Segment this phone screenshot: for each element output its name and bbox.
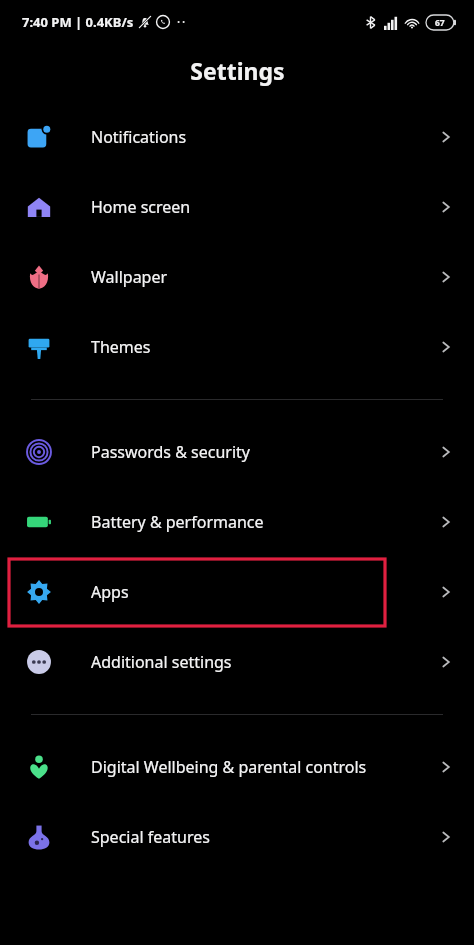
other: Passwords and security bbox=[26, 439, 52, 465]
staticText: Passwords & security bbox=[91, 441, 426, 463]
other: Special features bbox=[26, 824, 52, 850]
other: Additional settings bbox=[26, 649, 52, 675]
staticText: Digital Wellbeing & parental controls bbox=[91, 756, 426, 778]
button[interactable]: Passwords and security bbox=[0, 417, 474, 487]
staticText: Home screen bbox=[91, 196, 426, 218]
other: Battery and performance bbox=[26, 509, 52, 535]
other: Wallpaper bbox=[26, 264, 52, 290]
other: Digital Wellbeing and parental controls bbox=[26, 754, 52, 780]
staticText: Special features bbox=[91, 826, 426, 848]
other: Notifications bbox=[26, 124, 52, 150]
other: Home screen bbox=[26, 194, 52, 220]
staticText: Battery & performance bbox=[91, 511, 426, 533]
button[interactable]: Digital Wellbeing and parental controls bbox=[0, 732, 474, 802]
button[interactable]: Battery and performance bbox=[0, 487, 474, 557]
staticText: Settings bbox=[190, 55, 285, 86]
other: Themes bbox=[26, 334, 52, 360]
staticText: Notifications bbox=[91, 126, 426, 148]
staticText: Additional settings bbox=[91, 651, 426, 673]
staticText: Themes bbox=[91, 336, 426, 358]
button[interactable]: Home screen bbox=[0, 172, 474, 242]
staticText: Wallpaper bbox=[91, 266, 426, 288]
button[interactable]: Special features bbox=[0, 802, 474, 872]
staticText: 7:40 PM | 0.4KB/s bbox=[22, 13, 134, 31]
button[interactable]: Notifications bbox=[0, 102, 474, 172]
staticText: Apps bbox=[91, 581, 426, 603]
staticText: 67 bbox=[435, 17, 445, 29]
button[interactable]: Wallpaper bbox=[0, 242, 474, 312]
button[interactable]: Additional settings bbox=[0, 627, 474, 697]
button[interactable]: Themes bbox=[0, 312, 474, 382]
button[interactable]: Apps bbox=[0, 557, 474, 627]
other: Apps bbox=[26, 579, 52, 605]
